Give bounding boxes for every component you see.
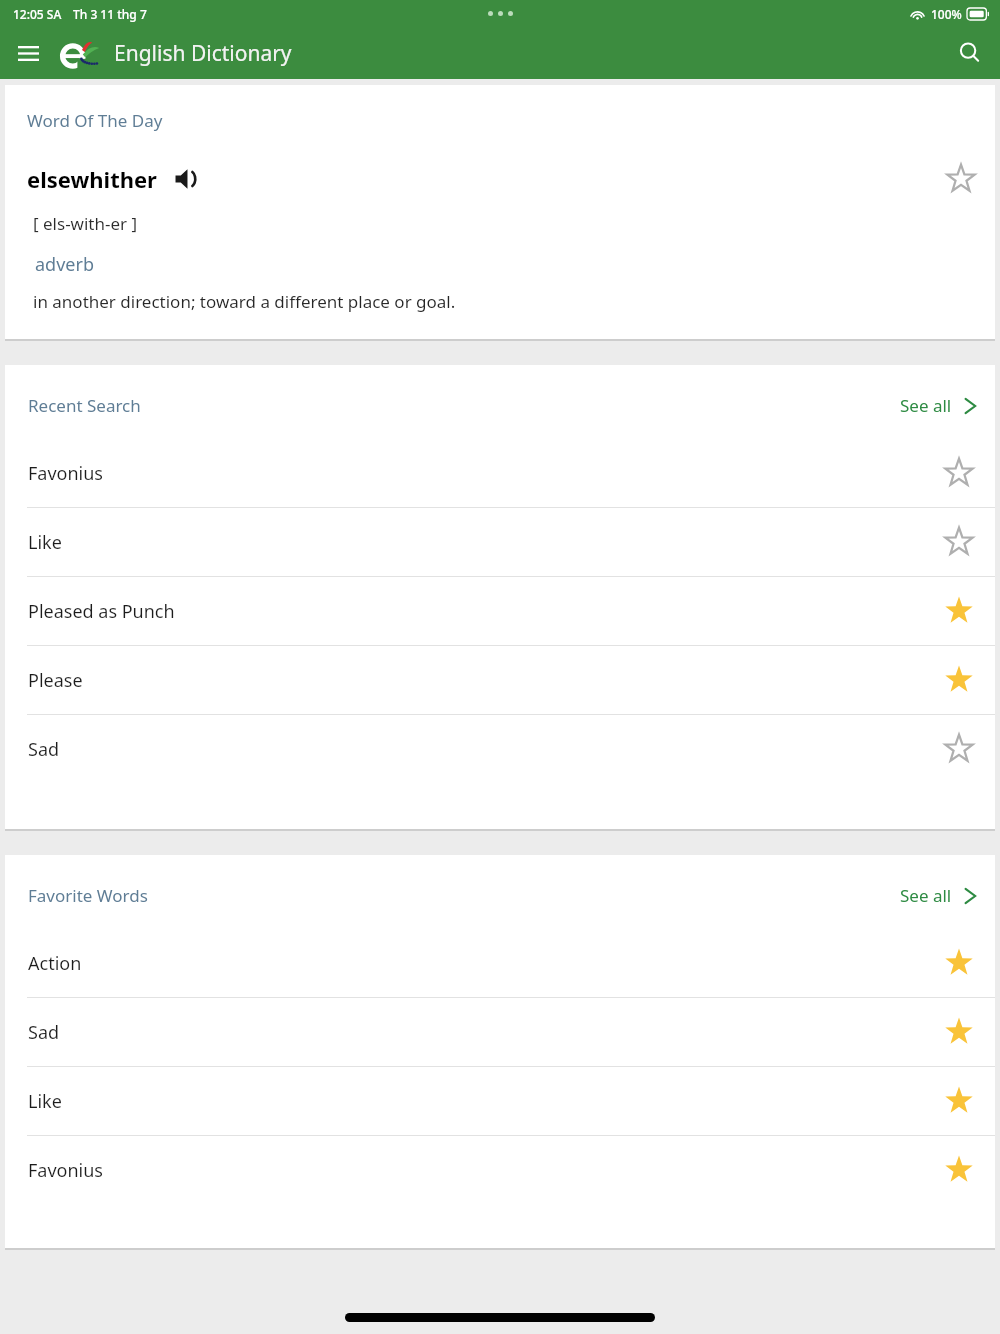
staticText: Recent Search — [28, 394, 141, 417]
button[interactable]: Sad — [5, 998, 995, 1066]
button[interactable]: Remove Action from favorites — [937, 941, 981, 985]
button[interactable]: Like — [5, 508, 995, 576]
staticText: Pleased as Punch — [28, 599, 175, 624]
staticText: [ els-with-er ] — [33, 212, 138, 235]
button[interactable]: Remove Please from favorites — [937, 658, 981, 702]
staticText: Sad — [28, 737, 60, 762]
button[interactable]: Please — [5, 646, 995, 714]
button[interactable]: Action — [5, 929, 995, 997]
staticText: Favonius — [28, 1158, 103, 1183]
staticText: Action — [28, 951, 82, 976]
staticText: adverb — [35, 252, 94, 277]
staticText: Please — [28, 668, 83, 693]
button[interactable]: Pleased as Punch — [5, 577, 995, 645]
button[interactable]: Favonius — [5, 439, 995, 507]
staticText: Like — [28, 530, 62, 555]
button[interactable]: Add to favorites — [940, 158, 982, 200]
button[interactable]: See all — [894, 388, 983, 423]
button[interactable]: Add Favonius to favorites — [937, 451, 981, 495]
button[interactable]: Remove Favonius from favorites — [937, 1148, 981, 1192]
staticText: elsewhither — [27, 164, 157, 194]
staticText: See all — [900, 884, 952, 907]
staticText: Like — [28, 1089, 62, 1114]
staticText: English Dictionary — [114, 39, 292, 68]
button[interactable]: Favonius — [5, 1136, 995, 1204]
staticText: Favonius — [28, 461, 103, 486]
button[interactable]: Remove Sad from favorites — [937, 1010, 981, 1054]
staticText: See all — [900, 394, 952, 417]
staticText: Th 3 11 thg 7 — [73, 6, 147, 22]
button[interactable]: Open navigation menu — [6, 31, 50, 75]
staticText: Word Of The Day — [27, 109, 163, 132]
staticText: in another direction; toward a different… — [33, 290, 456, 313]
button[interactable]: Sad — [5, 715, 995, 783]
staticText: Sad — [28, 1020, 60, 1045]
staticText: 12:05 SA — [13, 6, 62, 22]
button[interactable]: Pronounce word — [171, 162, 205, 196]
button[interactable]: Like — [5, 1067, 995, 1135]
button[interactable]: Add Sad to favorites — [937, 727, 981, 771]
button[interactable]: Remove Like from favorites — [937, 1079, 981, 1123]
staticText: Favorite Words — [28, 884, 148, 907]
button[interactable]: Search — [948, 31, 992, 75]
button[interactable]: See all — [894, 878, 983, 913]
staticText: 100% — [931, 6, 962, 22]
button[interactable]: Add Like to favorites — [937, 520, 981, 564]
button[interactable]: Remove Pleased as Punch from favorites — [937, 589, 981, 633]
